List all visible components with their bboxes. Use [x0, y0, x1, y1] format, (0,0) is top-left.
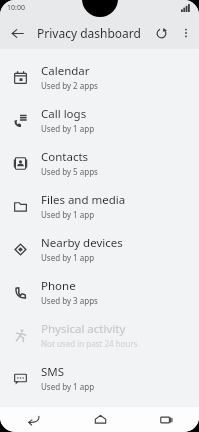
staticText: Used by 1 app	[41, 381, 95, 392]
staticText: Contacts	[41, 149, 89, 165]
staticText: Physical activity	[41, 321, 126, 337]
staticText: SMS	[41, 364, 65, 380]
staticText: Files and media	[41, 192, 126, 208]
staticText: Nearby devices	[41, 235, 123, 251]
staticText: Used by 5 apps	[41, 166, 98, 177]
button[interactable]: Recent apps	[133, 407, 199, 432]
staticText: Used by 1 app	[41, 123, 95, 134]
staticText: Used by 1 app	[41, 209, 95, 220]
button[interactable]: Call logs	[0, 98, 199, 141]
button[interactable]: Files and media	[0, 184, 199, 227]
staticText: Calendar	[41, 63, 90, 79]
staticText: Used by 3 apps	[41, 295, 98, 306]
button[interactable]: SMS	[0, 356, 199, 399]
staticText: Used by 2 apps	[41, 80, 98, 91]
button[interactable]: Nearby devices	[0, 227, 199, 270]
staticText: Privacy dashboard	[37, 25, 141, 41]
button[interactable]: Phone	[0, 270, 199, 313]
staticText: Phone	[41, 278, 76, 294]
button[interactable]: More options	[174, 21, 198, 45]
staticText: Not used in past 24 hours	[41, 338, 138, 349]
button[interactable]: Physical activity	[0, 313, 199, 356]
staticText: Call logs	[41, 106, 87, 122]
button[interactable]: Home	[67, 407, 133, 432]
button[interactable]: Calendar	[0, 55, 199, 98]
button[interactable]: Contacts	[0, 141, 199, 184]
button[interactable]: Refresh	[148, 20, 174, 46]
button[interactable]: Back	[0, 407, 67, 432]
staticText: 10:00	[7, 3, 25, 13]
staticText: Used by 1 app	[41, 252, 95, 263]
button[interactable]: Navigate up	[4, 20, 30, 46]
